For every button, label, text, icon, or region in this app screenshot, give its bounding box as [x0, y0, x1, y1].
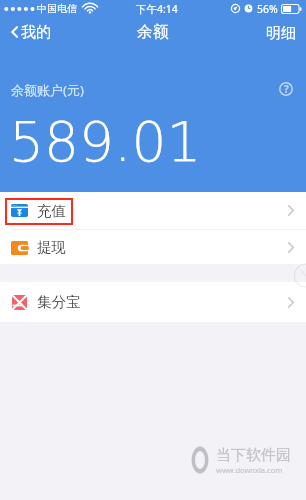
staticText: 集分宝	[37, 293, 81, 311]
staticText: 下午4:14	[136, 2, 178, 16]
staticText: 余额	[137, 22, 169, 42]
button[interactable]: 我的	[0, 18, 61, 46]
button[interactable]: 集分宝	[0, 282, 306, 322]
button[interactable]: 明细	[256, 18, 306, 46]
staticText: www.downxia.com	[216, 465, 283, 475]
button[interactable]: 充值	[0, 192, 306, 229]
staticText: 充值	[37, 202, 66, 220]
staticText: 56%	[257, 2, 278, 16]
staticText: 我的	[21, 23, 51, 41]
staticText: 中国电信	[37, 2, 77, 15]
staticText: 589.01	[9, 110, 202, 174]
staticText: ?	[284, 82, 289, 96]
staticText: 余额账户(元)	[11, 81, 84, 99]
staticText: 提现	[37, 238, 66, 256]
button[interactable]: Help	[279, 82, 293, 96]
staticText: 当下软件园	[216, 446, 291, 465]
button[interactable]: 提现	[0, 230, 306, 264]
